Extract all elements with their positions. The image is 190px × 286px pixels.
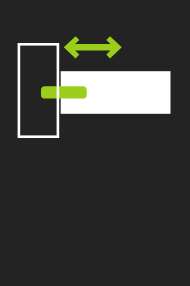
button[interactable]: Sliding door animation diagram (0, 0, 190, 286)
